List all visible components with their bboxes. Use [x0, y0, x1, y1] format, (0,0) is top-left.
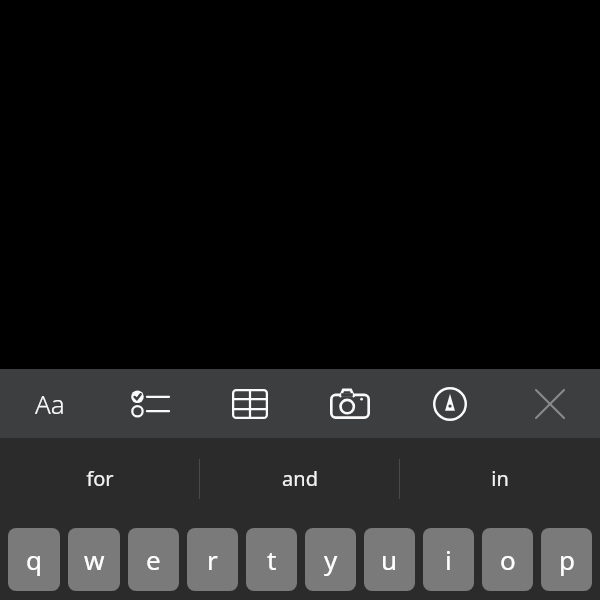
staticText: Aa [35, 386, 65, 421]
button[interactable]: p [541, 528, 592, 591]
staticText: for [86, 465, 114, 492]
button[interactable]: q [8, 528, 60, 591]
staticText: and [282, 465, 318, 492]
staticText: y [324, 542, 338, 577]
staticText: i [445, 542, 452, 577]
button[interactable]: and [200, 438, 399, 519]
button[interactable]: for [0, 438, 199, 519]
staticText: t [267, 542, 277, 577]
staticText: r [207, 542, 218, 577]
staticText: q [26, 542, 42, 577]
button[interactable]: Camera [300, 369, 400, 438]
button[interactable]: r [187, 528, 238, 591]
staticText: p [559, 542, 575, 577]
button[interactable]: t [246, 528, 297, 591]
button[interactable]: Draw [400, 369, 500, 438]
button[interactable]: w [68, 528, 120, 591]
button[interactable]: Close [500, 369, 600, 438]
staticText: e [146, 542, 161, 577]
staticText: in [491, 465, 509, 492]
button[interactable]: y [305, 528, 356, 591]
button[interactable]: o [482, 528, 533, 591]
button[interactable]: e [128, 528, 179, 591]
staticText: w [84, 542, 105, 577]
button[interactable]: Table [200, 369, 300, 438]
button[interactable]: u [364, 528, 415, 591]
staticText: u [381, 542, 398, 577]
button[interactable]: Text format [0, 369, 100, 438]
staticText: o [500, 542, 516, 577]
button[interactable]: in [400, 438, 600, 519]
button[interactable]: Checklist [100, 369, 200, 438]
button[interactable]: i [423, 528, 474, 591]
